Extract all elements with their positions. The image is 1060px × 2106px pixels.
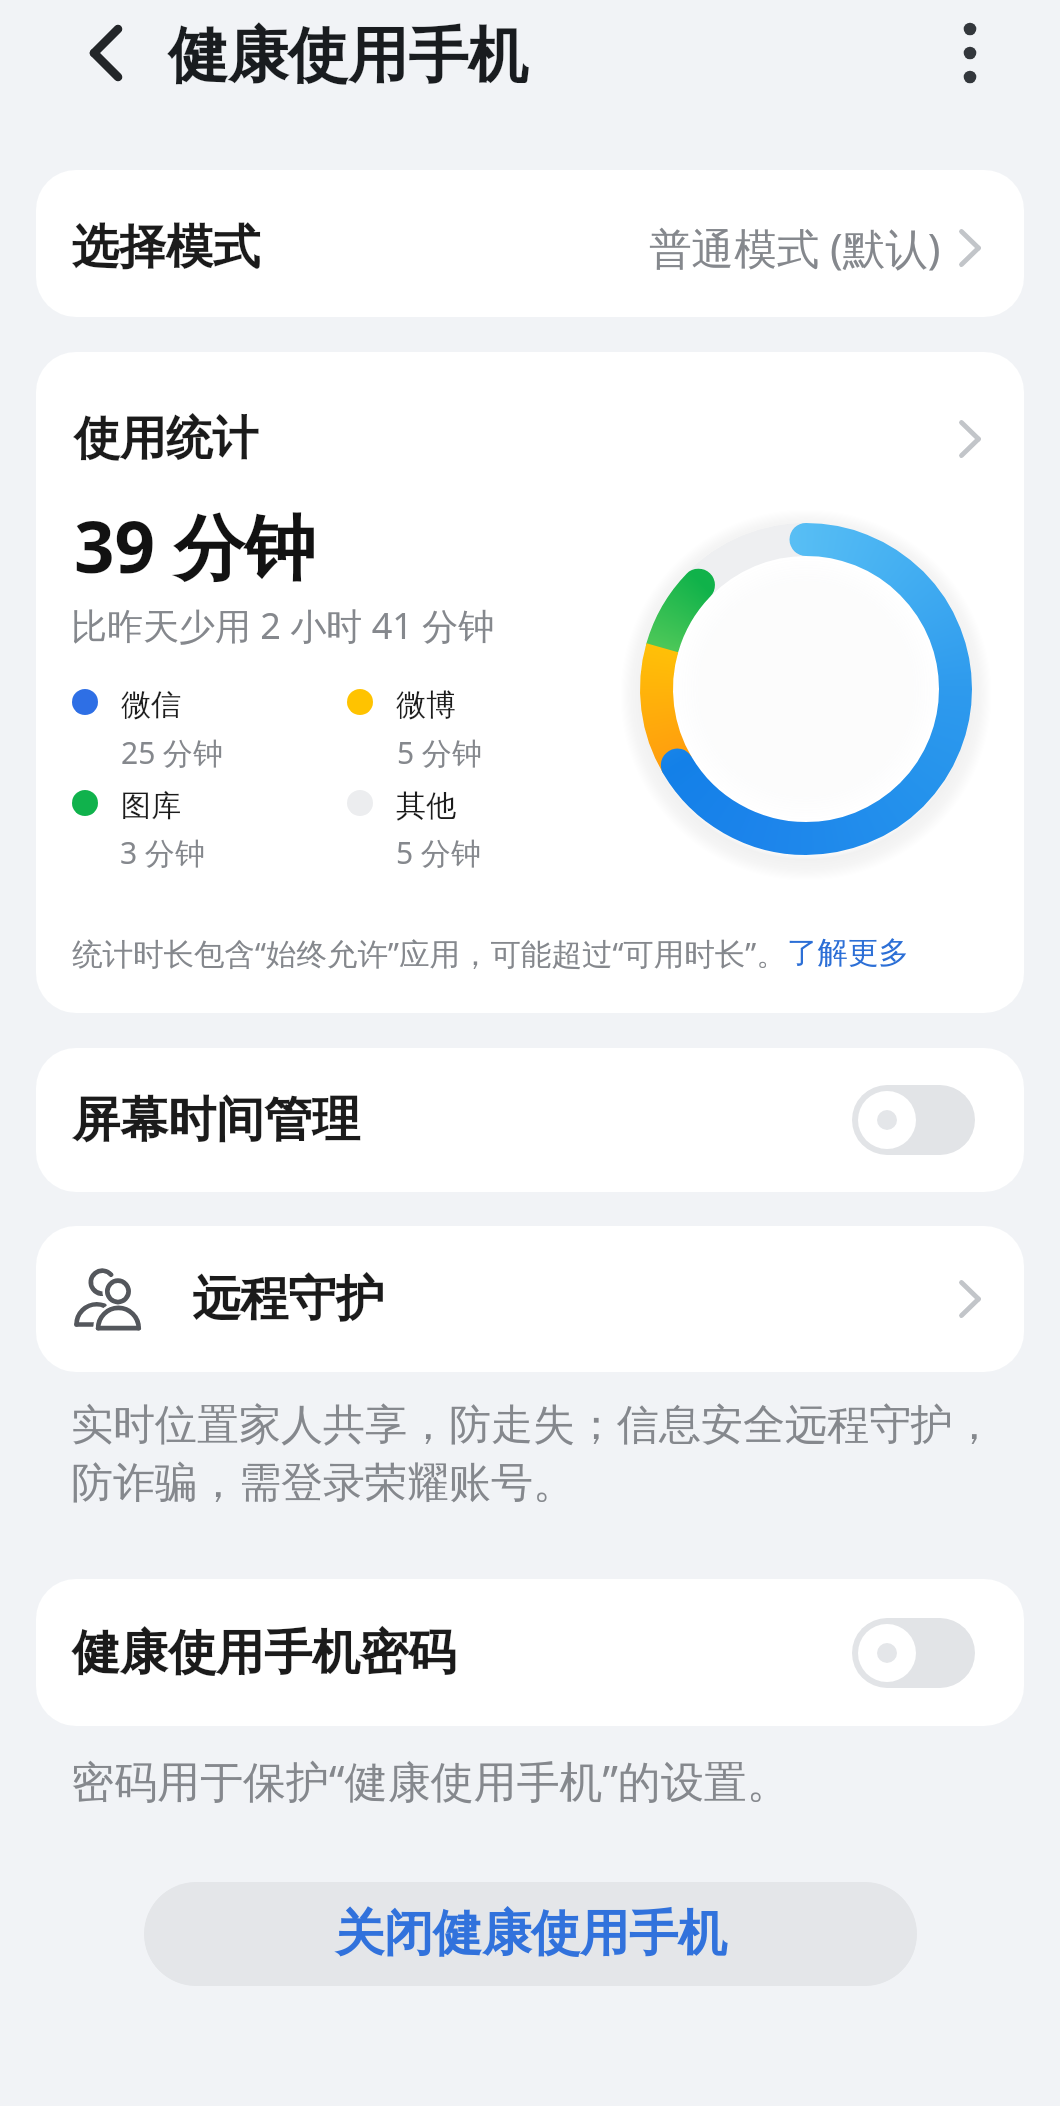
staticText: 比昨天少用 2 小时 41 分钟: [71, 601, 495, 650]
staticText: 其他: [396, 787, 456, 825]
staticText: 统计时长包含“始终允许”应用，可能超过“可用时长”。: [72, 932, 787, 974]
button[interactable]: Toggle: [852, 1085, 975, 1155]
staticText: 微信: [121, 686, 181, 724]
staticText: 普通模式 (默认): [649, 219, 941, 277]
button[interactable]: 了解更多: [787, 934, 909, 972]
staticText: 健康使用手机密码: [72, 1623, 456, 1683]
staticText: 25 分钟: [121, 732, 224, 773]
staticText: 关闭健康使用手机: [335, 1903, 727, 1965]
staticText: 远程守护: [192, 1269, 384, 1329]
staticText: 使用统计: [74, 410, 258, 468]
staticText: 5 分钟: [396, 832, 481, 873]
button[interactable]: 健康使用手机密码: [36, 1579, 1024, 1726]
button[interactable]: 关闭健康使用手机: [144, 1882, 917, 1986]
staticText: 密码用于保护“健康使用手机”的设置。: [71, 1751, 790, 1810]
staticText: 屏幕时间管理: [72, 1090, 360, 1150]
button[interactable]: 使用统计: [36, 352, 1024, 526]
button[interactable]: Back: [64, 11, 148, 95]
staticText: 39 分钟: [74, 497, 316, 594]
staticText: 微博: [396, 686, 456, 724]
button[interactable]: More options: [928, 11, 1012, 95]
button[interactable]: 选择模式: [36, 170, 1024, 317]
staticText: 健康使用手机: [168, 18, 528, 94]
staticText: 5 分钟: [397, 732, 482, 773]
staticText: 3 分钟: [120, 832, 205, 873]
staticText: 实时位置家人共享，防走失；信息安全远程守护，防诈骗，需登录荣耀账号。: [71, 1399, 1001, 1510]
button[interactable]: 屏幕时间管理: [36, 1048, 1024, 1192]
button[interactable]: 远程守护: [36, 1226, 1024, 1372]
staticText: 选择模式: [72, 218, 260, 277]
button[interactable]: Toggle: [852, 1618, 975, 1688]
staticText: 图库: [121, 787, 181, 825]
